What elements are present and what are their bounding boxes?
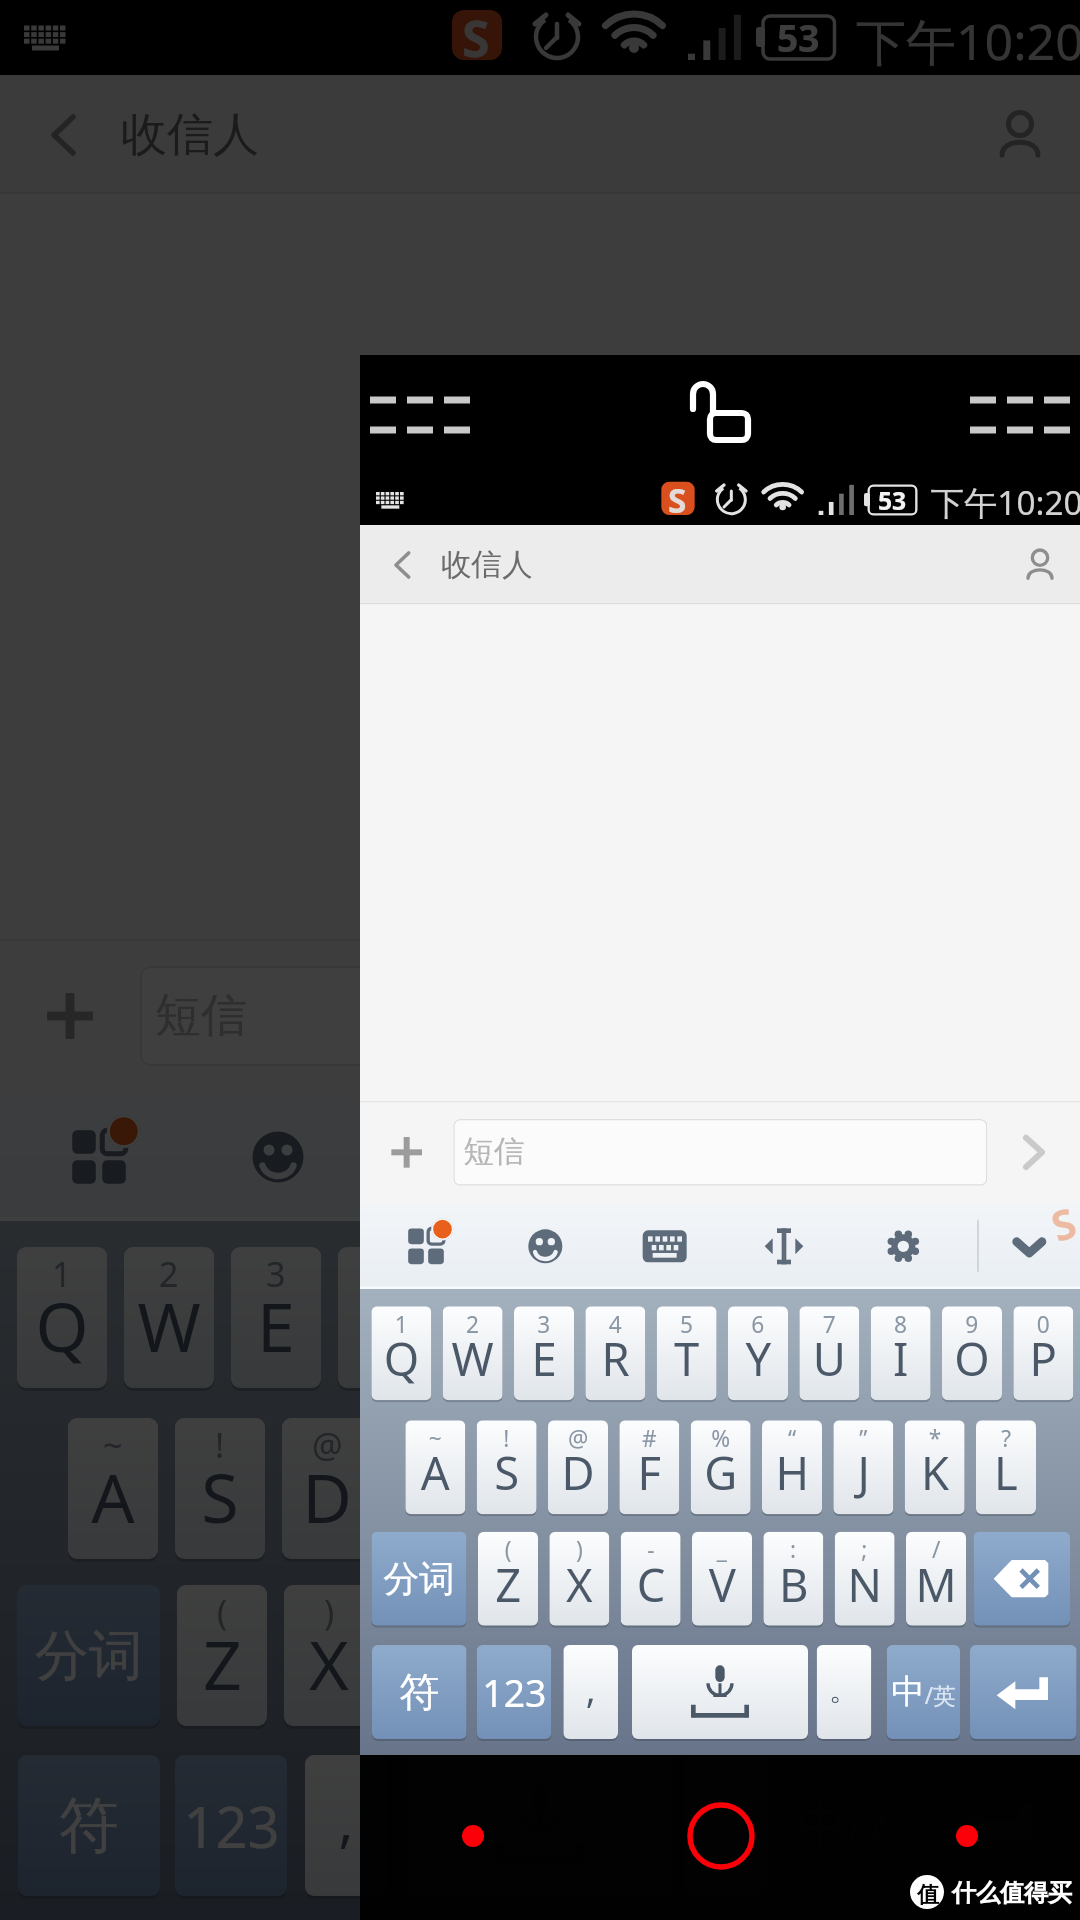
button[interactable]: X	[549, 1532, 609, 1626]
button[interactable]	[973, 1532, 1070, 1626]
button[interactable]: I	[766, 1247, 856, 1388]
button[interactable]: Q	[17, 1247, 107, 1388]
button[interactable]: U	[799, 1306, 859, 1400]
button[interactable]: X	[284, 1585, 374, 1726]
button[interactable]: W	[443, 1306, 503, 1400]
button[interactable]: V	[498, 1585, 588, 1726]
button[interactable]: K	[905, 1420, 965, 1514]
button[interactable]: H	[762, 1420, 822, 1514]
staticText: I	[893, 1328, 909, 1390]
button[interactable]: F	[389, 1418, 479, 1559]
button[interactable]: 短信	[453, 1119, 987, 1186]
button[interactable]	[408, 1755, 672, 1896]
button[interactable]: ,	[563, 1645, 618, 1739]
staticText: @	[312, 1422, 343, 1468]
button[interactable]: 。	[817, 1645, 871, 1739]
staticText: _	[717, 1534, 727, 1565]
staticText: O	[954, 1328, 990, 1390]
button[interactable]: I	[871, 1306, 931, 1400]
button[interactable]: 短信	[140, 966, 941, 1066]
button[interactable]: 分词	[371, 1532, 467, 1626]
button[interactable]: Back	[16, 75, 112, 194]
button[interactable]: G	[496, 1418, 586, 1559]
button[interactable]: Z	[177, 1585, 267, 1726]
button[interactable]: D	[548, 1420, 608, 1514]
button[interactable]: Cursor	[725, 1204, 843, 1289]
button[interactable]: V	[692, 1532, 752, 1626]
button[interactable]: A	[68, 1418, 158, 1559]
staticText: 4	[609, 1309, 622, 1340]
button[interactable]: Keyboard	[368, 1093, 546, 1221]
button[interactable]: B	[605, 1585, 695, 1726]
button[interactable]: E	[231, 1247, 321, 1388]
button[interactable]: 中	[887, 1645, 960, 1739]
button[interactable]: S	[477, 1420, 537, 1514]
button[interactable]: P	[980, 1247, 1070, 1388]
button[interactable]: 分词	[17, 1585, 160, 1726]
button[interactable]: Q	[371, 1306, 431, 1400]
button[interactable]: Settings	[844, 1204, 963, 1289]
button[interactable]: R	[338, 1247, 428, 1388]
button[interactable]: O	[873, 1247, 963, 1388]
button[interactable]: 。	[685, 1755, 767, 1896]
button[interactable]: J	[833, 1420, 893, 1514]
button[interactable]	[970, 1645, 1077, 1739]
button[interactable]: Hide keyboard	[970, 1204, 1080, 1289]
button[interactable]: Y	[728, 1306, 788, 1400]
button[interactable]: Contacts	[960, 75, 1080, 194]
button[interactable]: Y	[552, 1247, 642, 1388]
button[interactable]: 符	[18, 1755, 160, 1896]
button[interactable]: ,	[305, 1755, 387, 1896]
button[interactable]	[915, 1755, 1075, 1896]
button[interactable]: L	[924, 1418, 1014, 1559]
button[interactable]: U	[659, 1247, 749, 1388]
button[interactable]: W	[124, 1247, 214, 1388]
button[interactable]: K	[817, 1418, 907, 1559]
button[interactable]: T	[657, 1306, 717, 1400]
button[interactable]: 符	[372, 1645, 467, 1739]
button[interactable]: R	[585, 1306, 645, 1400]
button[interactable]: M	[819, 1585, 909, 1726]
button[interactable]	[920, 1585, 1065, 1726]
button[interactable]: F	[619, 1420, 679, 1514]
button[interactable]: B	[763, 1532, 823, 1626]
staticText: “	[642, 1422, 655, 1468]
button[interactable]: D	[282, 1418, 372, 1559]
button[interactable]: Settings	[726, 1093, 904, 1221]
button[interactable]: S	[175, 1418, 265, 1559]
button[interactable]: Emoji	[189, 1093, 367, 1221]
button[interactable]: Attach	[360, 1101, 453, 1204]
button[interactable]: Apps	[367, 1204, 485, 1289]
button[interactable]: Keyboard	[605, 1204, 724, 1289]
button[interactable]: A	[405, 1420, 465, 1514]
button[interactable]: T	[445, 1247, 535, 1388]
button[interactable]: O	[942, 1306, 1002, 1400]
button[interactable]: Send	[987, 1101, 1080, 1204]
button[interactable]: N	[835, 1532, 895, 1626]
button[interactable]: 123	[175, 1755, 287, 1896]
button[interactable]	[632, 1645, 808, 1739]
button[interactable]: M	[906, 1532, 966, 1626]
staticText: P	[1029, 1328, 1057, 1390]
button[interactable]: Emoji	[486, 1204, 605, 1289]
button[interactable]: L	[976, 1420, 1036, 1514]
button[interactable]: J	[710, 1418, 800, 1559]
button[interactable]: P	[1013, 1306, 1073, 1400]
button[interactable]: Back	[371, 525, 435, 604]
button[interactable]: E	[514, 1306, 574, 1400]
button[interactable]: C	[621, 1532, 681, 1626]
button[interactable]: C	[391, 1585, 481, 1726]
button[interactable]: N	[712, 1585, 802, 1726]
button[interactable]: G	[691, 1420, 751, 1514]
button[interactable]: H	[603, 1418, 693, 1559]
button[interactable]: Z	[478, 1532, 538, 1626]
button[interactable]: Apps	[10, 1093, 188, 1221]
staticText: S	[462, 4, 490, 72]
button[interactable]: 123	[477, 1645, 551, 1739]
button[interactable]: Attach	[0, 939, 140, 1093]
button[interactable]: Cursor	[547, 1093, 725, 1221]
button[interactable]: Hide keyboard	[915, 1093, 1080, 1221]
button[interactable]: Contacts	[1000, 525, 1080, 604]
